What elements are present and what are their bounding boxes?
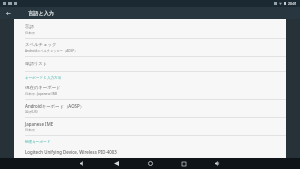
button[interactable]: 言語: [14, 21, 286, 38]
button[interactable]: Logitech Unifying Device, Wireless PID-4…: [14, 147, 286, 158]
staticText: 日本語: [25, 31, 35, 35]
button[interactable]: 単語リスト: [14, 57, 286, 71]
button[interactable]: 戻る: [112, 159, 121, 168]
staticText: キーボードと入力方法: [25, 76, 62, 81]
staticText: 英語(US): [25, 110, 38, 114]
staticText: 日本語: [25, 128, 35, 132]
button[interactable]: 音量を上げる: [213, 159, 222, 168]
staticText: Androidキーボード（AOSP）: [25, 103, 85, 109]
button[interactable]: 最近のアプリ: [179, 159, 188, 168]
button[interactable]: 現在のキーボード: [14, 83, 286, 99]
button[interactable]: 戻る: [4, 9, 13, 18]
staticText: Japanese IME: [25, 121, 54, 127]
staticText: 20:01: [288, 1, 297, 6]
button[interactable]: Japanese IME: [14, 118, 286, 135]
staticText: スペルチェック: [25, 42, 57, 48]
staticText: 単語リスト: [25, 61, 48, 67]
button[interactable]: Androidキーボード（AOSP）: [14, 100, 286, 117]
button[interactable]: 音量を下げる: [78, 159, 87, 168]
staticText: 物理キーボード: [25, 140, 51, 145]
staticText: 現在のキーボード: [25, 85, 61, 91]
button[interactable]: スペルチェック: [14, 39, 286, 56]
button[interactable]: ホーム: [146, 159, 155, 168]
staticText: Logitech Unifying Device, Wireless PID-4…: [25, 149, 117, 155]
staticText: Androidスペルチェッカー（AOSP）: [25, 49, 78, 53]
staticText: 言語と入力: [28, 10, 55, 17]
staticText: 言語: [25, 24, 34, 30]
staticText: 日本語 - Japanese IME: [25, 92, 58, 96]
